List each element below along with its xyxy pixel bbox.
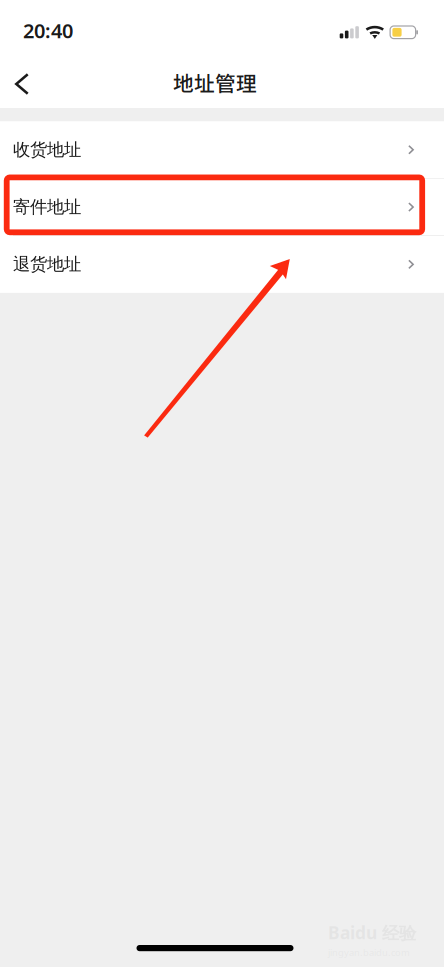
staticText: 20:40 xyxy=(23,17,73,44)
staticText: 寄件地址 xyxy=(13,196,81,218)
button[interactable]: 返回 xyxy=(0,62,44,106)
staticText: Baidu 经验 xyxy=(328,921,416,944)
button[interactable]: 退货地址 xyxy=(0,236,444,293)
staticText: 地址管理 xyxy=(173,67,257,97)
button[interactable]: 寄件地址 xyxy=(0,179,444,236)
staticText: 退货地址 xyxy=(13,254,81,275)
staticText: 收货地址 xyxy=(13,139,81,160)
button[interactable]: 收货地址 xyxy=(0,121,444,179)
